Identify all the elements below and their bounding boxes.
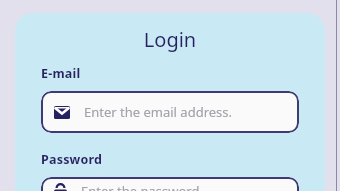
button[interactable]: Password	[41, 177, 299, 191]
staticText: Login	[15, 26, 325, 53]
button[interactable]: E-mail	[41, 91, 299, 133]
staticText: E-mail	[41, 65, 81, 82]
staticText: Enter the email address.	[84, 103, 233, 121]
staticText: Enter the password.	[81, 182, 203, 191]
staticText: Password	[41, 151, 103, 168]
